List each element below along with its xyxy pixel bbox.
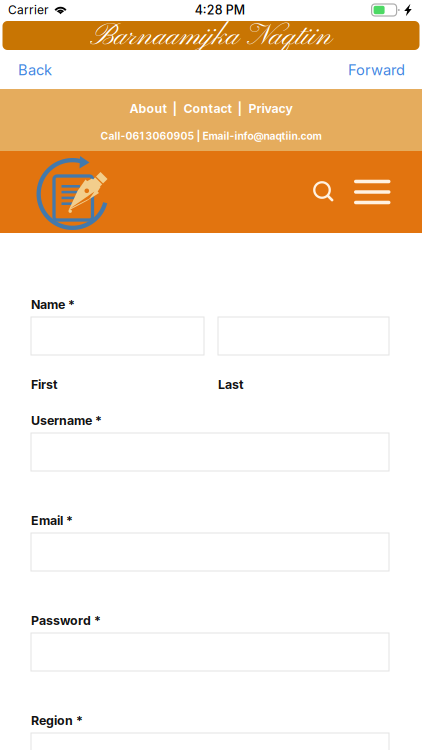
button[interactable]: Forward: [331, 50, 422, 90]
staticText: |: [231, 101, 248, 116]
staticText: Name *: [31, 297, 75, 312]
button[interactable]: Menu: [354, 176, 390, 208]
staticText: Barnaamijka Naqtiin: [90, 18, 332, 56]
staticText: 4:28 PM: [195, 2, 245, 17]
staticText: Privacy: [248, 101, 292, 116]
staticText: Region *: [31, 713, 83, 728]
button[interactable]: Back: [0, 50, 70, 90]
staticText: First: [31, 377, 58, 392]
staticText: Back: [18, 61, 52, 79]
staticText: Forward: [348, 61, 405, 79]
staticText: Password *: [31, 613, 101, 628]
staticText: Call-061 3060905 | Email-info@naqtiin.co…: [100, 130, 321, 142]
staticText: About: [129, 101, 166, 116]
button[interactable]: Search: [313, 181, 335, 203]
staticText: Last: [218, 377, 244, 392]
staticText: Carrier: [8, 3, 49, 17]
staticText: Email *: [31, 513, 73, 528]
staticText: Username *: [31, 413, 102, 428]
button[interactable]: Contact: [183, 101, 231, 116]
button[interactable]: About: [129, 101, 166, 116]
button[interactable]: Privacy: [248, 101, 292, 116]
staticText: Contact: [183, 101, 231, 116]
staticText: |: [166, 101, 183, 116]
